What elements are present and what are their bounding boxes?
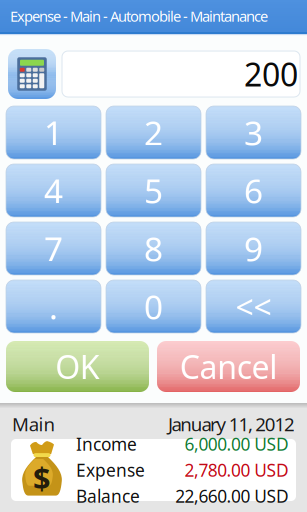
- staticText: 0: [144, 284, 163, 329]
- staticText: Expense - Main - Automobile - Maintananc…: [10, 6, 268, 26]
- staticText: 4: [44, 168, 63, 213]
- button[interactable]: 8: [106, 222, 201, 275]
- staticText: Balance: [76, 484, 140, 507]
- staticText: <<: [235, 285, 271, 328]
- button[interactable]: OK: [6, 341, 149, 392]
- button[interactable]: 6: [206, 164, 301, 217]
- staticText: 22,660.00 USD: [175, 484, 289, 507]
- staticText: .: [49, 284, 58, 329]
- staticText: Main: [12, 412, 55, 436]
- staticText: Cancel: [180, 345, 277, 388]
- staticText: 6: [244, 168, 263, 213]
- button[interactable]: 5: [106, 164, 201, 217]
- staticText: $: [33, 457, 51, 498]
- staticText: 3: [244, 110, 263, 155]
- button[interactable]: Cancel: [157, 341, 300, 392]
- staticText: Expense: [76, 458, 145, 481]
- button[interactable]: 7: [6, 222, 101, 275]
- staticText: 2,780.00 USD: [185, 458, 289, 481]
- button[interactable]: 1: [6, 106, 101, 159]
- staticText: 200: [244, 53, 298, 95]
- staticText: 8: [144, 226, 163, 271]
- button[interactable]: 0: [106, 280, 201, 333]
- staticText: OK: [55, 345, 100, 388]
- staticText: 2: [144, 110, 163, 155]
- button[interactable]: <<: [206, 280, 301, 333]
- button[interactable]: .: [6, 280, 101, 333]
- button[interactable]: 9: [206, 222, 301, 275]
- button[interactable]: 3: [206, 106, 301, 159]
- staticText: 1: [44, 110, 63, 155]
- button[interactable]: 4: [6, 164, 101, 217]
- staticText: Income: [76, 432, 137, 455]
- staticText: 9: [244, 226, 263, 271]
- button[interactable]: Calculator: [8, 49, 56, 99]
- staticText: 7: [44, 226, 63, 271]
- staticText: 5: [144, 168, 163, 213]
- staticText: 6,000.00 USD: [185, 432, 289, 455]
- staticText: January 11, 2012: [168, 412, 295, 436]
- button[interactable]: 2: [106, 106, 201, 159]
